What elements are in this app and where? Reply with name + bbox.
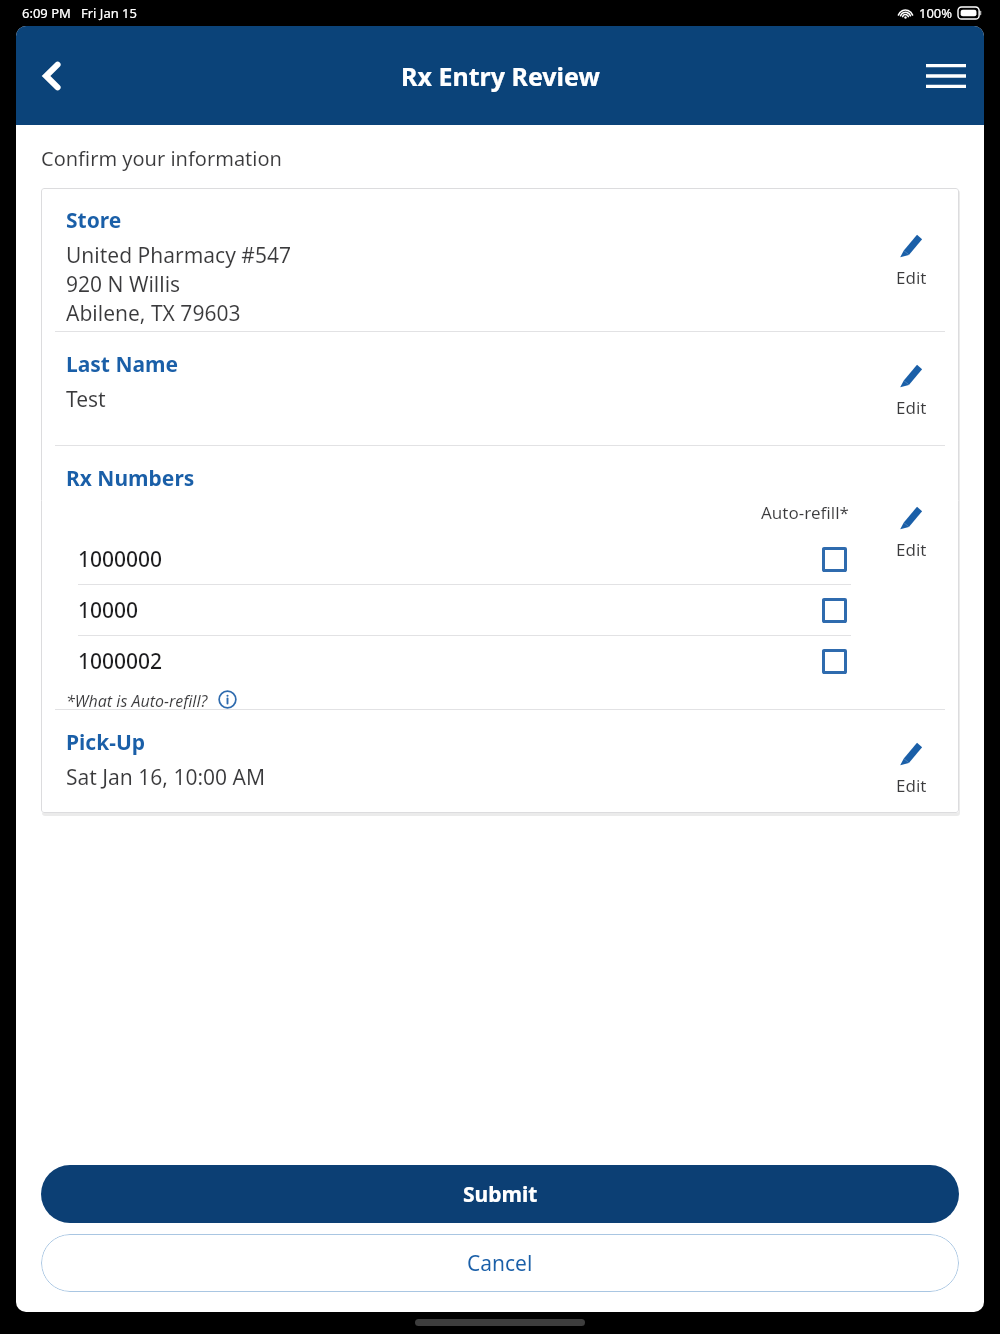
button[interactable]: Edit	[863, 332, 959, 445]
staticText: 10000	[78, 596, 139, 625]
staticText: Abilene, TX 79603	[66, 299, 241, 328]
staticText: United Pharmacy #547	[66, 241, 291, 270]
staticText: 100%	[919, 4, 953, 22]
button[interactable]: Edit	[863, 710, 959, 813]
staticText: Cancel	[467, 1249, 533, 1278]
staticText: Edit	[896, 396, 927, 419]
staticText: Sat Jan 16, 10:00 AM	[66, 763, 266, 792]
other: Edit	[896, 738, 926, 768]
staticText: Test	[66, 385, 106, 414]
staticText: Confirm your information	[41, 145, 282, 172]
button[interactable]: 1000002	[66, 636, 863, 686]
button[interactable]: Menu	[918, 48, 974, 104]
staticText: 1000000	[78, 545, 163, 574]
button[interactable]: Edit	[863, 446, 959, 709]
staticText: Edit	[896, 266, 927, 289]
staticText: Rx Entry Review	[401, 59, 600, 93]
staticText: Rx Numbers	[66, 464, 195, 493]
button[interactable]: Back	[26, 50, 78, 102]
staticText: Edit	[896, 538, 927, 561]
button[interactable]: Submit	[41, 1165, 959, 1223]
staticText: Fri Jan 15	[81, 4, 137, 22]
staticText: Edit	[896, 774, 927, 797]
staticText: Store	[66, 206, 122, 235]
staticText: 1000002	[78, 647, 163, 676]
button[interactable]: What is Auto-refill	[216, 690, 238, 709]
staticText: 6:09 PM	[22, 4, 71, 22]
button[interactable]: Cancel	[41, 1234, 959, 1292]
staticText: Auto-refill*	[761, 501, 849, 524]
staticText: Submit	[463, 1180, 538, 1209]
button[interactable]: Auto-refill 1000002	[822, 649, 847, 674]
button[interactable]: Auto-refill 1000000	[822, 547, 847, 572]
staticText: *What is Auto-refill?	[66, 690, 208, 709]
staticText: Last Name	[66, 350, 179, 379]
button[interactable]: Auto-refill 10000	[822, 598, 847, 623]
button[interactable]: 1000000	[66, 534, 863, 584]
staticText: Pick-Up	[66, 728, 146, 757]
staticText: 920 N Willis	[66, 270, 181, 299]
other: Edit	[896, 360, 926, 390]
button[interactable]: 10000	[66, 585, 863, 635]
other: Edit	[896, 502, 926, 532]
button[interactable]: Edit	[863, 188, 959, 331]
other: Edit	[896, 230, 926, 260]
